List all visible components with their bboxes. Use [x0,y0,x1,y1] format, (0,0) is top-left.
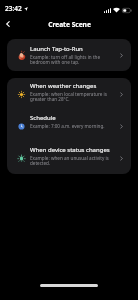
button[interactable]: Launch Tap-to-Run [7,39,131,71]
staticText: Launch Tap-to-Run [30,45,83,53]
button[interactable]: Schedule [7,110,131,142]
staticText: When weather changes [30,82,97,90]
staticText: Create Scene [48,20,91,29]
button[interactable]: When weather changes [7,78,131,110]
staticText: Example: when an unusual activity is det… [30,155,114,167]
staticText: Example: turn off all lights in the bedr… [30,54,114,66]
staticText: Schedule [30,114,56,122]
button[interactable]: Back [0,16,16,32]
staticText: When device status changes [30,146,110,154]
staticText: 23:42 [5,4,22,13]
staticText: Example: when local temperature is great… [30,91,114,103]
button[interactable]: When device status changes [7,142,131,174]
staticText: Example: 7:00 a.m. every morning. [30,123,105,129]
